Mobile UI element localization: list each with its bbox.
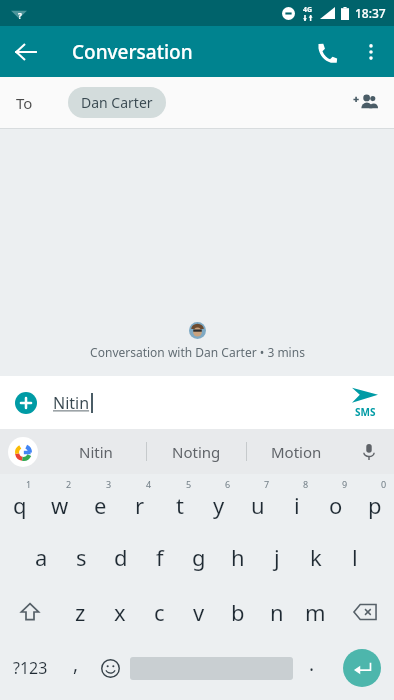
staticText: k (310, 542, 322, 572)
staticText: g (192, 542, 206, 572)
staticText: Noting (172, 442, 221, 462)
staticText: 3 (106, 478, 112, 490)
staticText: 18:37 (355, 5, 386, 21)
button[interactable]: g (179, 529, 218, 584)
staticText: 4 (146, 478, 152, 490)
button[interactable]: f (140, 529, 179, 584)
button[interactable]: 4 (120, 474, 160, 529)
button[interactable]: Google (8, 437, 38, 467)
staticText: , (73, 651, 79, 677)
staticText: v (193, 597, 205, 627)
button[interactable]: Add people (342, 81, 386, 125)
button[interactable]: m (296, 584, 335, 640)
button[interactable]: Shift (0, 584, 60, 640)
button[interactable]: 1 (0, 474, 40, 529)
button[interactable]: 3 (80, 474, 120, 529)
staticText: m (305, 597, 326, 627)
staticText: h (231, 542, 245, 572)
button[interactable]: Space (128, 640, 294, 696)
staticText: To (16, 93, 33, 113)
staticText: q (13, 490, 27, 520)
staticText: 1 (26, 478, 32, 490)
staticText: a (35, 542, 48, 572)
button[interactable]: n (257, 584, 296, 640)
button[interactable]: 6 (199, 474, 238, 529)
button[interactable]: Noting (147, 429, 246, 474)
staticText: z (75, 597, 86, 627)
button[interactable]: , (60, 640, 92, 696)
staticText: f (156, 542, 164, 572)
button[interactable]: Call (304, 29, 350, 75)
staticText: d (114, 542, 128, 572)
button[interactable]: z (60, 584, 100, 640)
staticText: s (76, 542, 87, 572)
button[interactable]: 9 (316, 474, 355, 529)
staticText: n (270, 597, 284, 627)
button[interactable]: Add attachment (6, 383, 46, 423)
staticText: 7 (264, 478, 270, 490)
staticText: p (368, 490, 382, 520)
staticText: u (251, 490, 265, 520)
button[interactable]: 0 (355, 474, 394, 529)
staticText: ?123 (13, 657, 48, 679)
button[interactable]: s (61, 529, 101, 584)
button[interactable]: ?123 (0, 640, 60, 696)
button[interactable]: Nitin (46, 429, 146, 474)
staticText: 5 (186, 478, 192, 490)
staticText: j (274, 542, 280, 572)
staticText: l (352, 542, 358, 572)
button[interactable]: h (218, 529, 257, 584)
button[interactable]: k (296, 529, 335, 584)
button[interactable]: . (294, 640, 330, 696)
staticText: r (135, 490, 145, 520)
staticText: b (231, 597, 245, 627)
button[interactable]: 5 (160, 474, 199, 529)
button[interactable]: Back (4, 30, 48, 74)
button[interactable]: c (140, 584, 179, 640)
staticText: 2 (66, 478, 72, 490)
staticText: Conversation with Dan Carter • 3 mins (90, 344, 305, 360)
button[interactable]: More options (350, 31, 392, 73)
staticText: 0 (381, 478, 387, 490)
staticText: x (114, 597, 126, 627)
staticText: Dan Carter (81, 93, 153, 112)
staticText: . (309, 651, 315, 677)
staticText: w (51, 490, 69, 520)
button[interactable]: l (335, 529, 374, 584)
button[interactable]: j (257, 529, 296, 584)
button[interactable]: Emoji (92, 640, 128, 696)
button[interactable]: Motion (247, 429, 346, 474)
staticText: t (176, 490, 184, 520)
button[interactable]: b (218, 584, 257, 640)
button[interactable]: SMS (346, 384, 384, 422)
button[interactable]: d (101, 529, 140, 584)
staticText: 6 (225, 478, 231, 490)
staticText: Nitin (53, 392, 90, 414)
staticText: 8 (303, 478, 309, 490)
staticText: i (294, 490, 300, 520)
staticText: e (94, 490, 107, 520)
button[interactable]: Voice input (352, 435, 386, 469)
button[interactable]: x (100, 584, 140, 640)
staticText: SMS (355, 405, 376, 419)
staticText: 9 (342, 478, 348, 490)
button[interactable]: 8 (277, 474, 316, 529)
button[interactable]: 2 (40, 474, 80, 529)
staticText: ? (18, 10, 22, 21)
staticText: c (154, 597, 165, 627)
button[interactable]: a (21, 529, 61, 584)
button[interactable]: 7 (238, 474, 277, 529)
staticText: Conversation (72, 39, 193, 65)
button[interactable]: v (179, 584, 218, 640)
button[interactable]: Backspace (335, 584, 394, 640)
button[interactable]: Enter (330, 640, 394, 696)
staticText: Motion (271, 442, 322, 462)
staticText: o (329, 490, 343, 520)
staticText: Nitin (79, 442, 113, 462)
button[interactable]: Dan Carter (68, 87, 166, 118)
staticText: y (213, 490, 225, 520)
staticText: 4G (303, 5, 313, 15)
